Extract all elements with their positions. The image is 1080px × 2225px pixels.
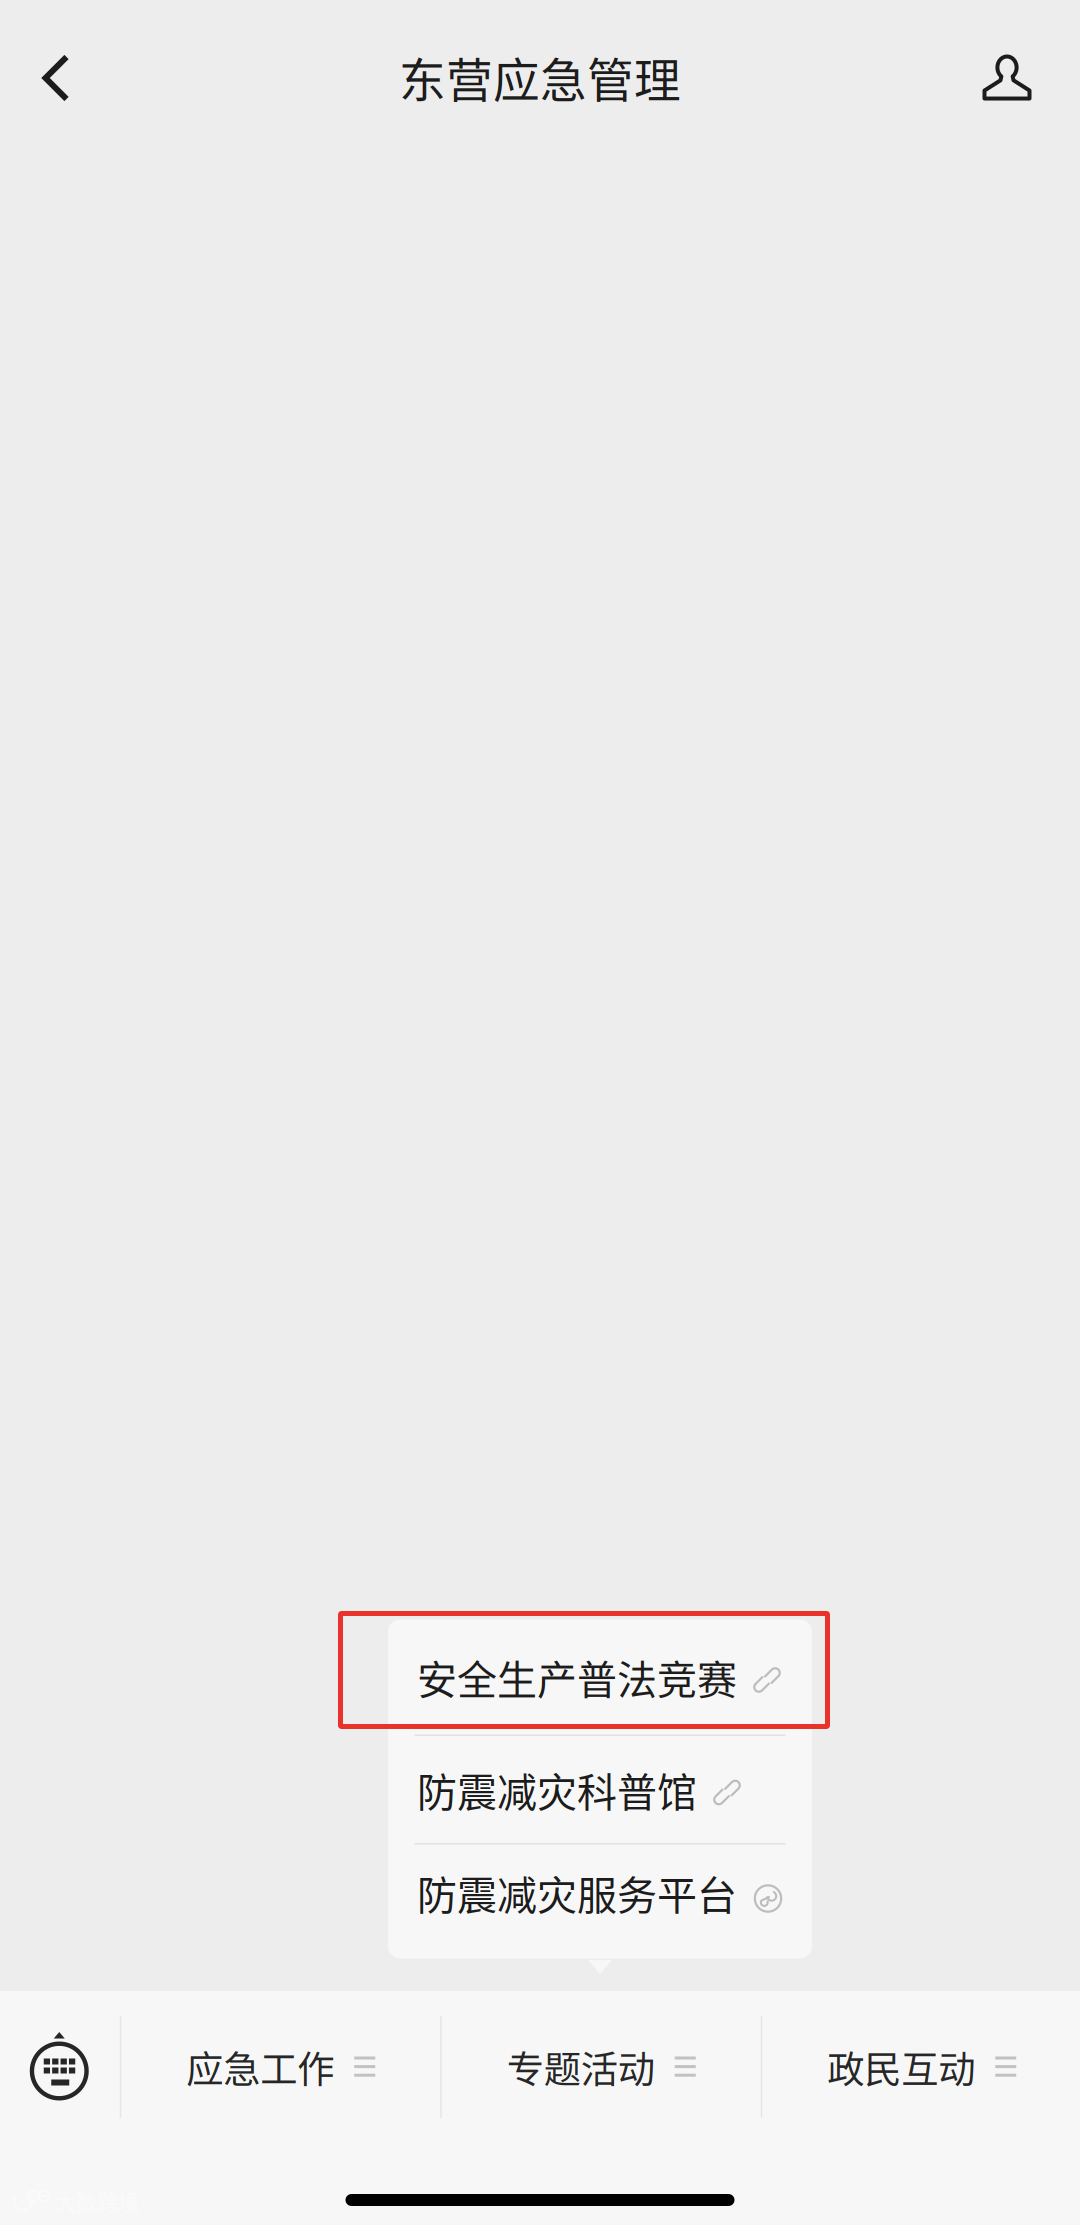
button[interactable]: 政民互动 [762,2001,1080,2133]
staticText: 东营应急管理 [399,43,681,111]
button[interactable]: Back [1,23,111,133]
button[interactable]: Contact [952,24,1062,134]
button[interactable]: 专题活动 [442,2001,761,2133]
staticText: 政民互动 [827,2040,975,2094]
button[interactable]: 防震减灾服务平台 [388,1844,812,1940]
staticText: 应急工作 [186,2040,334,2094]
staticText: 防震减灾科普馆 [417,1760,697,1818]
staticText: 安全生产普法竞赛 [417,1648,737,1706]
button[interactable]: 防震减灾科普馆 [388,1736,812,1843]
button[interactable]: Keyboard [0,2001,120,2133]
staticText: 防震减灾服务平台 [417,1863,737,1921]
button[interactable]: 安全生产普法竞赛 [388,1619,812,1734]
staticText: 专题活动 [507,2040,655,2094]
button[interactable]: 应急工作 [121,2001,440,2133]
